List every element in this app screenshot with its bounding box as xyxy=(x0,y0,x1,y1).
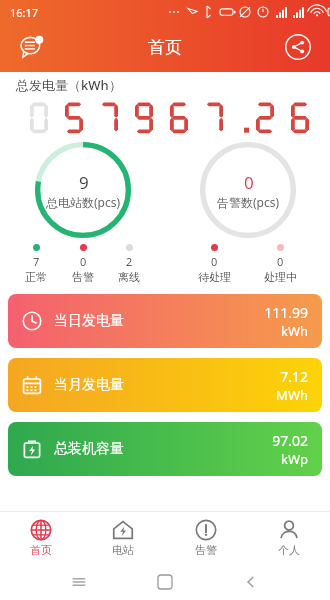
staticText: 首页 xyxy=(30,543,52,557)
staticText: 7 xyxy=(33,254,40,269)
staticText: 97.02 xyxy=(272,431,308,450)
staticText: 0 xyxy=(80,254,87,269)
staticText: kWh xyxy=(280,322,308,340)
button[interactable]: 当日发电量 xyxy=(8,294,322,348)
button[interactable]: 总装机容量 xyxy=(8,422,322,476)
staticText: 0 xyxy=(244,171,254,194)
staticText: 电站 xyxy=(112,543,134,557)
button[interactable]: Share xyxy=(278,27,318,67)
staticText: 告警数(pcs) xyxy=(217,194,280,210)
staticText: 告警 xyxy=(195,543,217,557)
staticText: 首页 xyxy=(148,37,182,58)
staticText: 告警 xyxy=(72,270,94,284)
staticText: 0 xyxy=(277,254,284,269)
button[interactable]: 当月发电量 xyxy=(8,358,322,412)
staticText: 正常 xyxy=(25,270,47,284)
staticText: 总电站数(pcs) xyxy=(46,194,121,210)
button[interactable]: 首页 xyxy=(0,512,82,564)
staticText: 总装机容量 xyxy=(54,440,124,458)
staticText: 当月发电量 xyxy=(54,376,124,394)
staticText: 处理中 xyxy=(264,270,297,284)
staticText: 个人 xyxy=(278,543,300,557)
staticText: 111.99 xyxy=(264,303,308,322)
button[interactable]: 告警 xyxy=(164,512,247,564)
button[interactable]: Messages xyxy=(12,27,52,67)
button[interactable]: 个人 xyxy=(247,512,330,564)
button[interactable]: 电站 xyxy=(82,512,164,564)
staticText: 2 xyxy=(126,254,133,269)
staticText: MWh xyxy=(276,386,308,404)
staticText: 总发电量（kWh） xyxy=(16,76,122,94)
staticText: 7.12 xyxy=(280,367,308,386)
staticText: 0 xyxy=(211,254,218,269)
staticText: 当日发电量 xyxy=(54,312,124,330)
staticText: kWp xyxy=(281,450,308,468)
staticText: 16:17 xyxy=(10,5,39,20)
staticText: 9 xyxy=(79,171,89,194)
staticText: 离线 xyxy=(118,270,140,284)
staticText: 待处理 xyxy=(198,270,231,284)
